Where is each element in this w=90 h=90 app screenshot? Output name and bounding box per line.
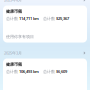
staticText: 使用你享有项目	[6, 34, 34, 39]
staticText: 2025年3月	[4, 50, 22, 56]
staticText: 健康币额	[6, 9, 22, 14]
staticText: 总计数	[6, 16, 18, 21]
staticText: 114,711 km	[19, 16, 39, 21]
button[interactable]: 健康币额	[3, 5, 87, 42]
staticText: 2025年4月	[4, 0, 22, 3]
staticText: $6,609	[56, 69, 67, 74]
staticText: 总计数	[43, 69, 55, 74]
button[interactable]: 2025年3月	[0, 47, 90, 58]
button[interactable]: 2025年4月	[0, 0, 90, 5]
staticText: 健康币额	[6, 62, 22, 67]
button[interactable]: 健康币额	[3, 58, 87, 90]
staticText: 106,493 km	[19, 69, 39, 74]
staticText: 总计数	[6, 69, 18, 74]
staticText: 总计数	[43, 16, 55, 21]
staticText: $25,367	[56, 16, 69, 21]
